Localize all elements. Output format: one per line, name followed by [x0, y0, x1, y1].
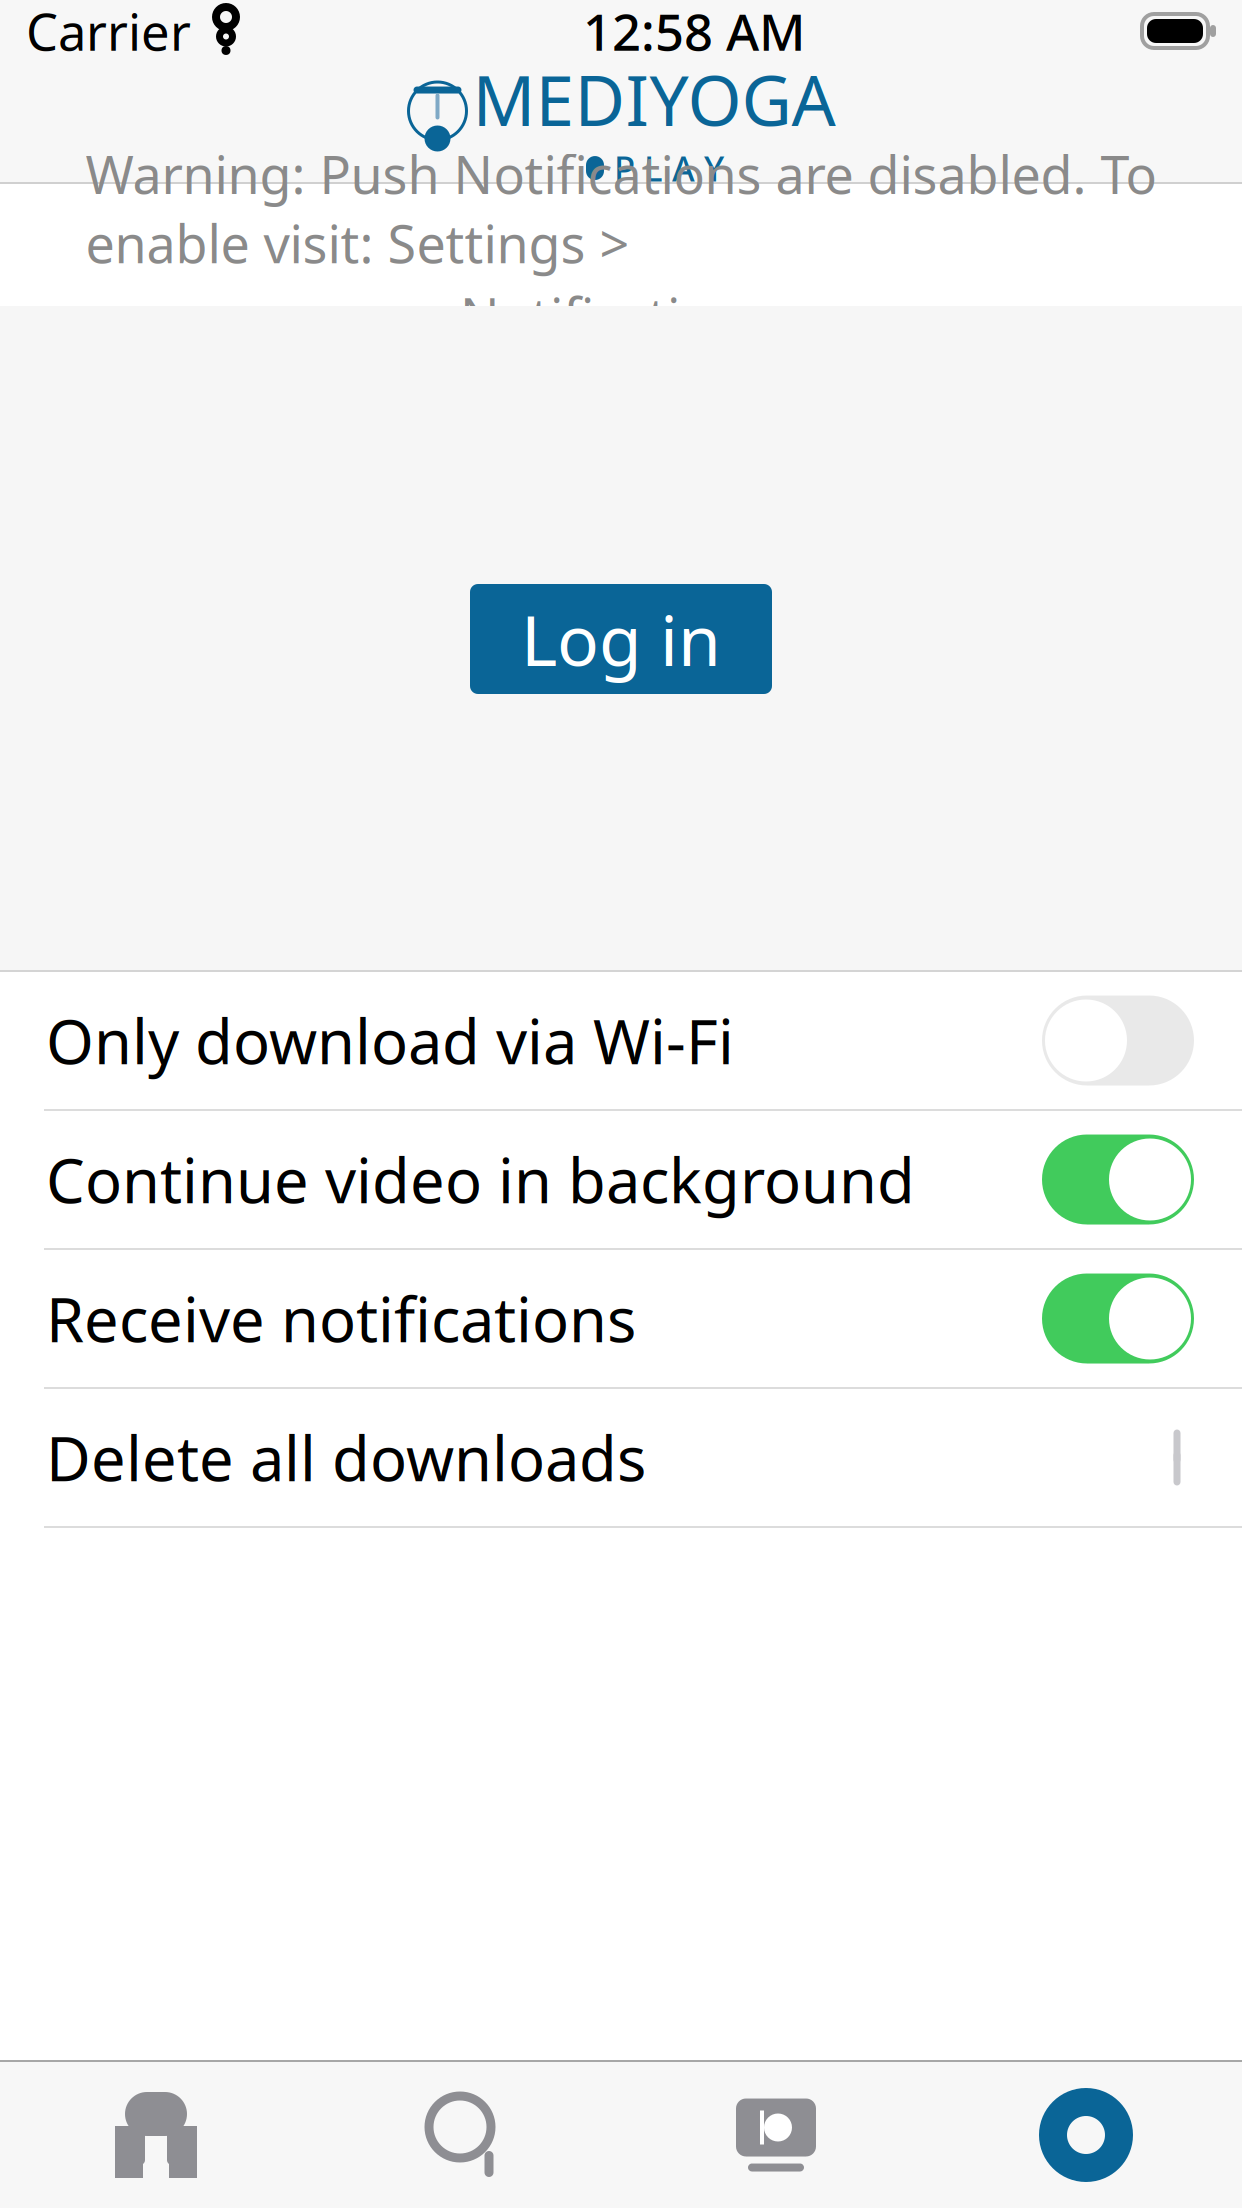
- staticText: MEDIYOGA: [472, 53, 835, 145]
- staticText: Only download via Wi-Fi: [46, 1000, 734, 1081]
- staticText: Warning: Push Notifications are disabled…: [85, 139, 1156, 277]
- button[interactable]: Receive notifications: [0, 1250, 1242, 1387]
- button[interactable]: Home: [1, 2062, 311, 2208]
- staticText: Carrier: [26, 0, 191, 65]
- staticText: Continue video in background: [46, 1139, 915, 1220]
- staticText: Delete all downloads: [46, 1417, 646, 1498]
- button[interactable]: Continue video in background: [0, 1111, 1242, 1248]
- button[interactable]: Log in: [470, 584, 772, 694]
- button[interactable]: Settings: [931, 2062, 1241, 2208]
- button[interactable]: Only download via Wi-Fi: [0, 972, 1242, 1109]
- button[interactable]: Videos: [621, 2062, 931, 2208]
- button[interactable]: Delete all downloads: [0, 1389, 1242, 1526]
- staticText: Log in: [521, 593, 721, 685]
- button[interactable]: Search: [311, 2062, 621, 2208]
- staticText: Receive notifications: [46, 1278, 636, 1359]
- staticText: 12:58 AM: [583, 0, 806, 65]
- staticText: P L A Y: [614, 145, 724, 191]
- staticText: Notifications.: [460, 281, 782, 351]
